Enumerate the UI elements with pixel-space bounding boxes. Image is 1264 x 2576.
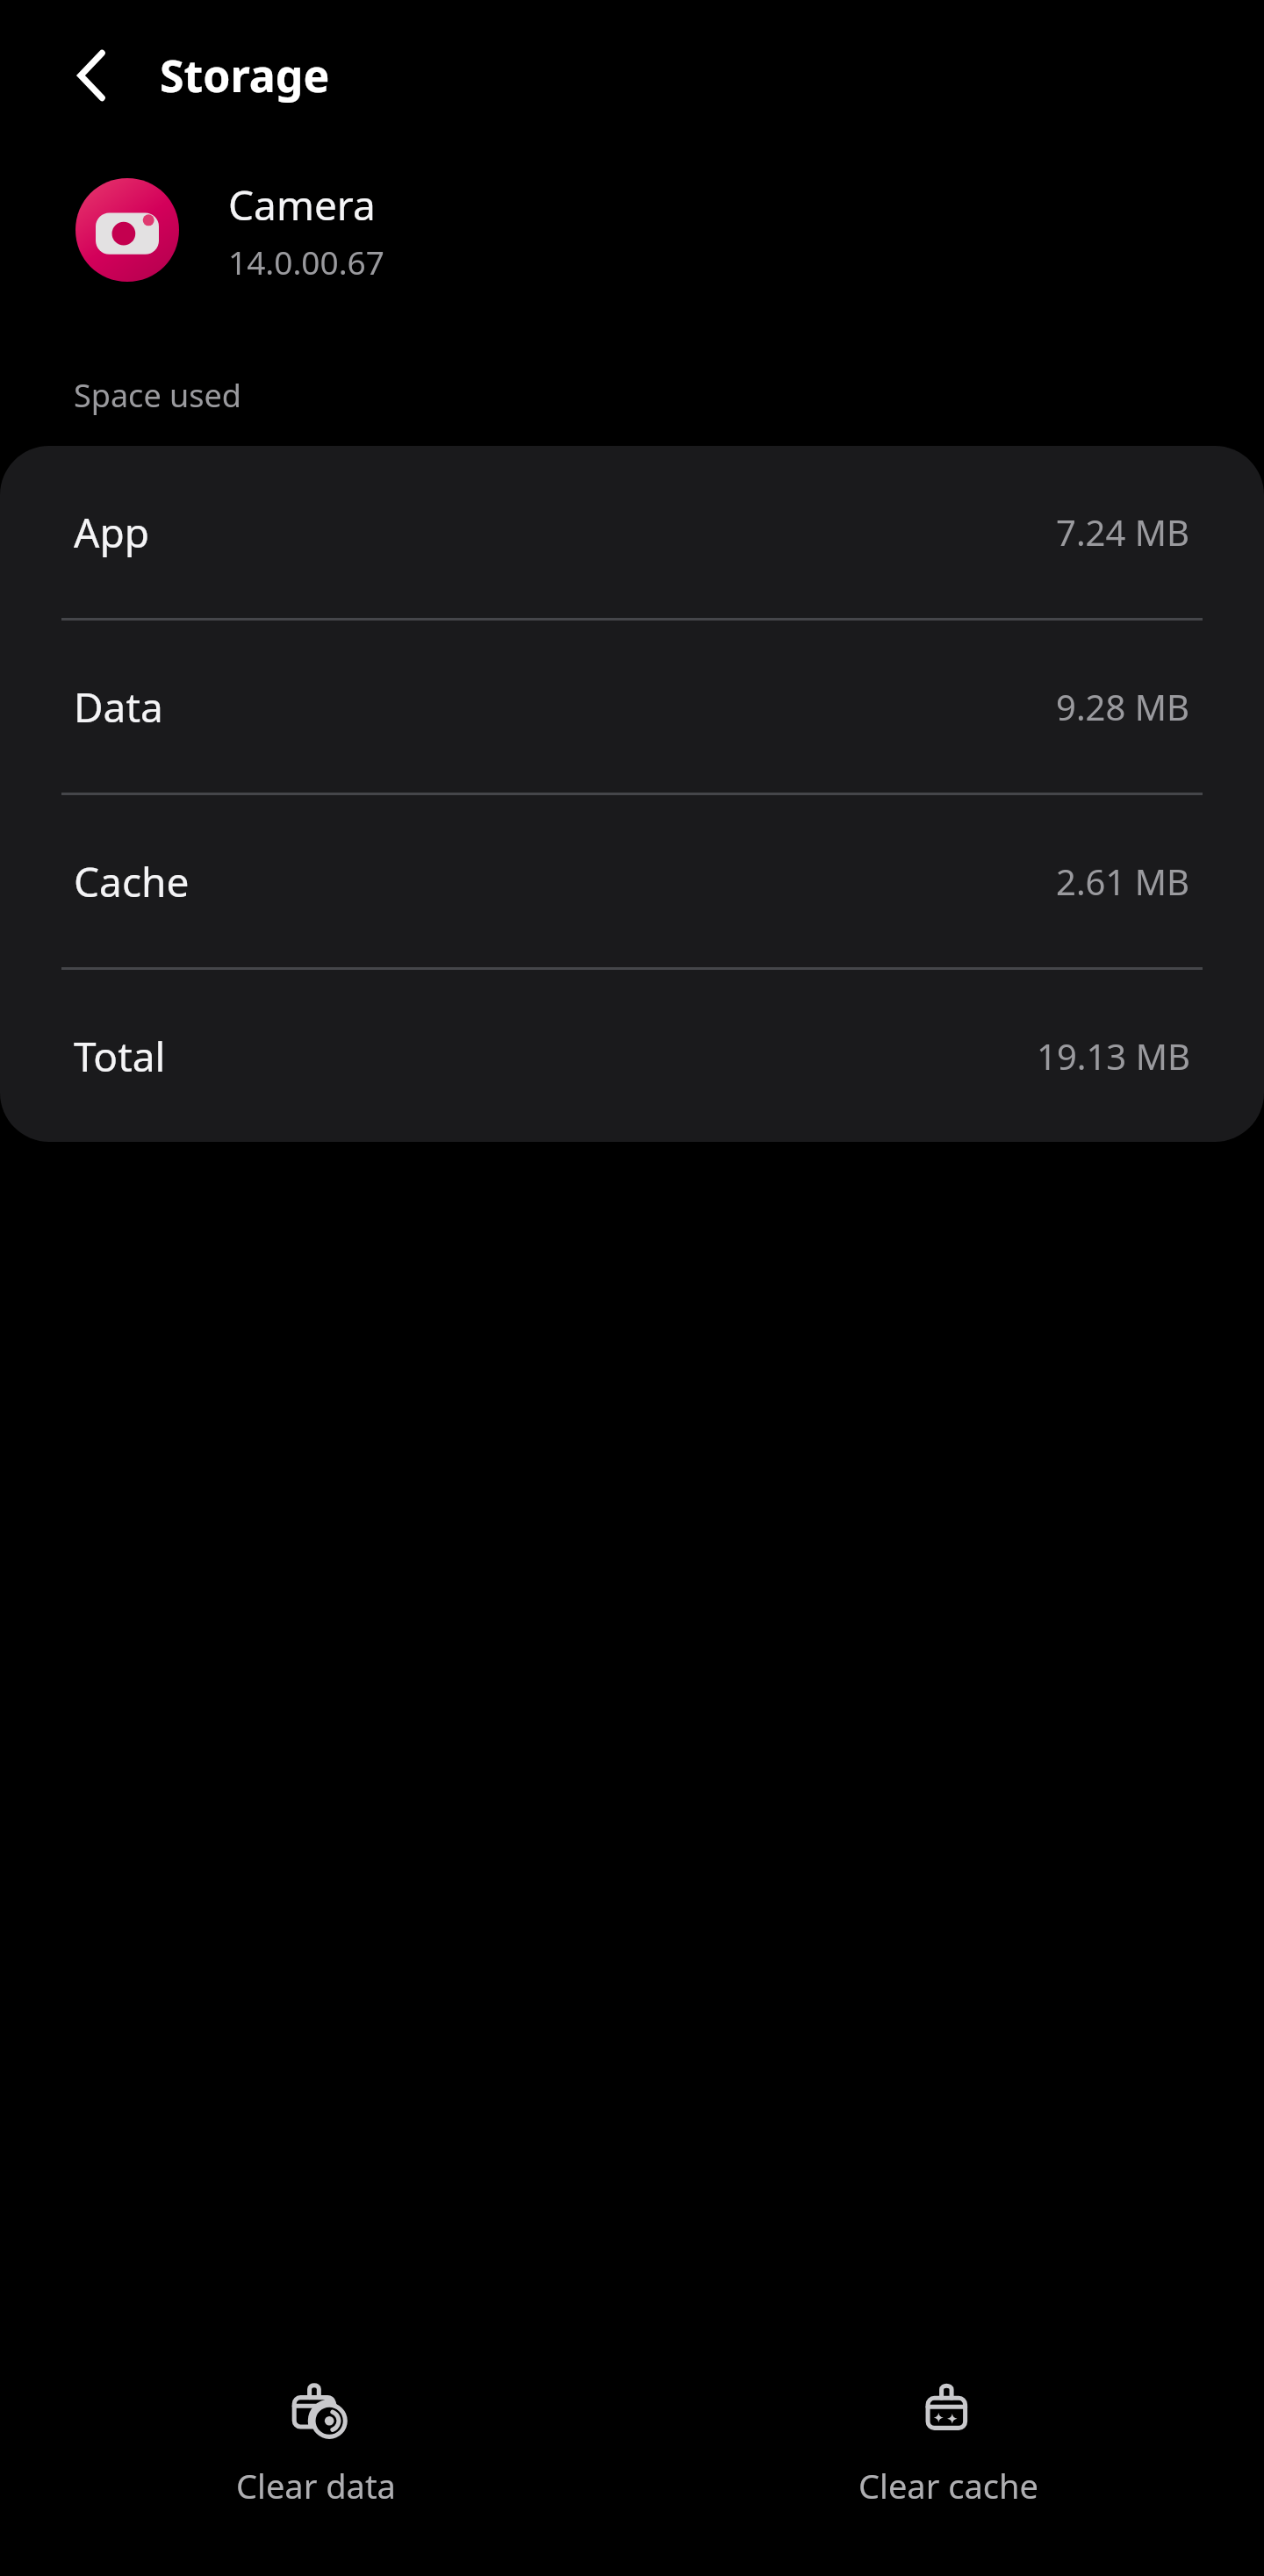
other: Clear data: [284, 2380, 348, 2445]
staticText: 2.61 MB: [1056, 857, 1190, 905]
staticText: Clear cache: [858, 2463, 1038, 2508]
other: Clear cache: [916, 2380, 980, 2445]
staticText: Space used: [74, 374, 241, 417]
button[interactable]: Back: [47, 30, 139, 121]
staticText: Clear data: [236, 2463, 396, 2508]
staticText: 7.24 MB: [1056, 508, 1190, 556]
staticText: Cache: [74, 854, 190, 909]
button[interactable]: Cache: [0, 795, 1264, 967]
staticText: Data: [74, 679, 163, 735]
staticText: 9.28 MB: [1056, 683, 1190, 730]
staticText: 19.13 MB: [1037, 1032, 1190, 1080]
button[interactable]: Clear data: [0, 2363, 632, 2526]
staticText: App: [74, 505, 149, 560]
button[interactable]: Total: [0, 970, 1264, 1142]
button[interactable]: Clear cache: [632, 2363, 1264, 2526]
button[interactable]: Camera: [0, 151, 1264, 309]
button[interactable]: Data: [0, 621, 1264, 793]
staticText: Camera: [228, 177, 376, 233]
staticText: 14.0.00.67: [228, 240, 384, 283]
staticText: Total: [74, 1029, 166, 1084]
button[interactable]: App: [0, 446, 1264, 618]
staticText: Storage: [160, 46, 330, 105]
